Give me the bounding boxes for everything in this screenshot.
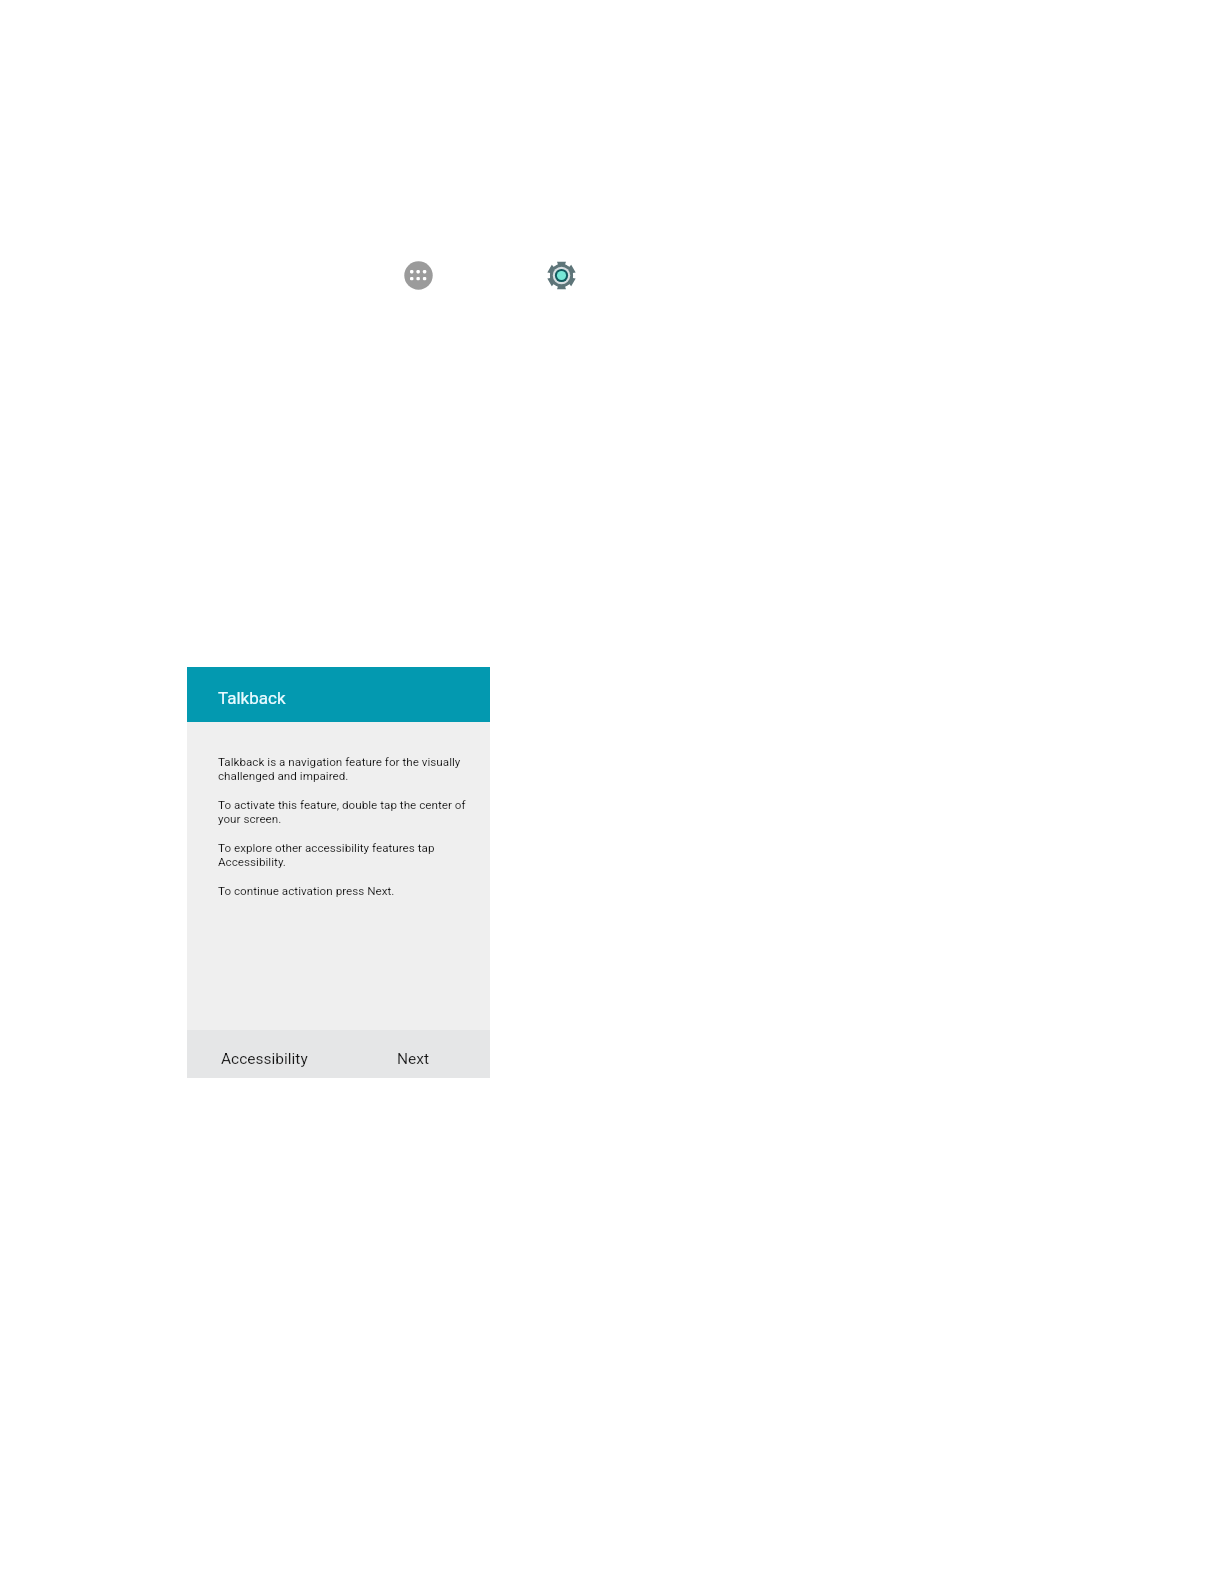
staticText: Talkback	[218, 688, 286, 708]
button[interactable]: All apps	[404, 261, 433, 290]
staticText: Next	[397, 1050, 430, 1068]
button[interactable]: Settings	[547, 261, 576, 290]
staticText: To continue activation press Next.	[218, 884, 395, 898]
button[interactable]: Accessibility	[221, 1050, 308, 1068]
staticText: Accessibility	[221, 1050, 308, 1068]
staticText: To activate this feature, double tap the…	[218, 798, 466, 826]
staticText: Talkback is a navigation feature for the…	[218, 755, 461, 783]
button[interactable]: Next	[397, 1050, 430, 1068]
staticText: To explore other accessibility features …	[218, 841, 435, 869]
